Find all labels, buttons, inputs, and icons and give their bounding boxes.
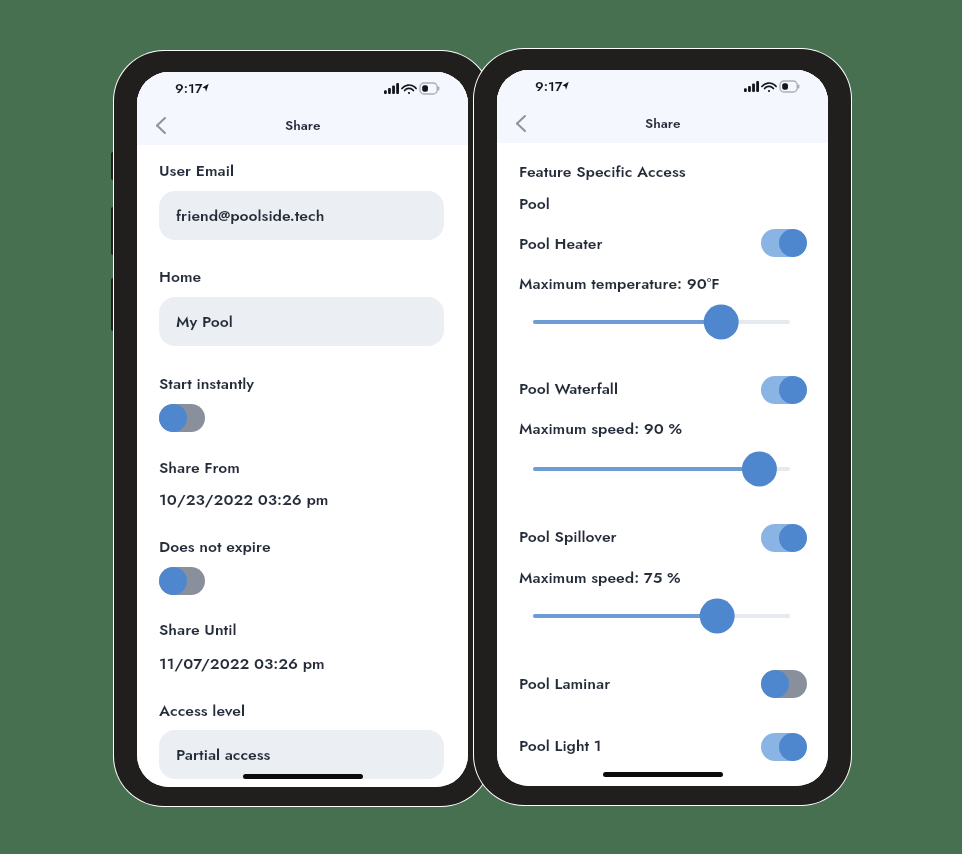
- staticText: 9:17: [175, 79, 203, 99]
- staticText: Pool Waterfall: [519, 377, 618, 400]
- staticText: Does not expire: [159, 535, 271, 558]
- staticText: Share: [645, 114, 681, 134]
- staticText: Feature Specific Access: [519, 160, 686, 183]
- staticText: Pool Heater: [519, 232, 603, 255]
- button[interactable]: friend@poolside.tech: [159, 191, 444, 240]
- staticText: Pool Light 1: [519, 734, 602, 757]
- staticText: Share Until: [159, 618, 237, 641]
- staticText: Pool Spillover: [519, 525, 617, 548]
- staticText: Maximum speed: 75 %: [519, 566, 681, 589]
- button[interactable]: Slider: [535, 302, 788, 342]
- staticText: 11/07/2022 03:26 pm: [159, 652, 325, 675]
- button[interactable]: Switch on: [761, 524, 807, 552]
- button[interactable]: Back: [501, 103, 541, 143]
- button[interactable]: Back: [141, 105, 181, 145]
- staticText: Access level: [159, 699, 246, 722]
- staticText: 10/23/2022 03:26 pm: [159, 488, 329, 511]
- staticText: Partial access: [176, 743, 271, 766]
- staticText: friend@poolside.tech: [176, 204, 325, 227]
- staticText: My Pool: [176, 310, 233, 333]
- button[interactable]: Switch off: [159, 567, 205, 595]
- button[interactable]: Switch on: [761, 229, 807, 257]
- staticText: Pool Laminar: [519, 672, 611, 695]
- staticText: User Email: [159, 159, 234, 182]
- button[interactable]: Slider: [535, 596, 788, 636]
- staticText: Maximum temperature: 90°F: [519, 272, 720, 295]
- staticText: Share From: [159, 456, 240, 479]
- button[interactable]: Switch off: [159, 404, 205, 432]
- button[interactable]: My Pool: [159, 297, 444, 346]
- button[interactable]: Partial access: [159, 730, 444, 779]
- button[interactable]: Slider: [535, 449, 788, 489]
- button[interactable]: Switch on: [761, 733, 807, 761]
- button[interactable]: Switch off: [761, 670, 807, 698]
- staticText: Start instantly: [159, 372, 254, 395]
- staticText: Share: [285, 116, 321, 136]
- staticText: Maximum speed: 90 %: [519, 417, 682, 440]
- staticText: Home: [159, 265, 202, 288]
- button[interactable]: Switch on: [761, 376, 807, 404]
- staticText: 9:17: [535, 77, 563, 97]
- staticText: Pool: [519, 192, 550, 215]
